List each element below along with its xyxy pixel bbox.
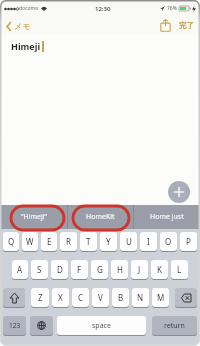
staticText: 12:30 bbox=[95, 5, 111, 13]
button[interactable]: V bbox=[92, 288, 109, 308]
staticText: “Himeji” bbox=[21, 212, 48, 222]
staticText: メモ bbox=[14, 21, 31, 31]
button[interactable]: F bbox=[71, 260, 88, 280]
button[interactable] bbox=[168, 181, 190, 203]
staticText: N bbox=[137, 292, 144, 303]
staticText: U bbox=[126, 236, 132, 247]
button[interactable]: C bbox=[72, 288, 89, 308]
staticText: K bbox=[157, 264, 162, 275]
button[interactable]: H bbox=[111, 260, 128, 280]
staticText: B bbox=[118, 292, 124, 303]
staticText: D bbox=[57, 264, 63, 275]
button[interactable]: J bbox=[131, 260, 148, 280]
staticText: Y bbox=[106, 236, 111, 247]
staticText: L bbox=[177, 264, 182, 275]
button[interactable] bbox=[175, 288, 197, 308]
staticText: Home just bbox=[150, 212, 184, 222]
staticText: space bbox=[92, 321, 111, 331]
button[interactable]: O bbox=[160, 232, 177, 252]
button[interactable]: Z bbox=[31, 288, 49, 308]
button[interactable] bbox=[3, 288, 25, 308]
button[interactable]: “Himeji” bbox=[1, 205, 67, 229]
button[interactable]: A bbox=[12, 260, 28, 280]
staticText: G bbox=[97, 264, 103, 275]
staticText: T bbox=[86, 236, 91, 247]
staticText: C bbox=[78, 292, 84, 303]
button[interactable]: G bbox=[91, 260, 108, 280]
button[interactable]: X bbox=[52, 288, 69, 308]
button[interactable]: D bbox=[51, 260, 68, 280]
button[interactable]: 123 bbox=[3, 316, 26, 336]
button[interactable]: return bbox=[152, 316, 197, 336]
button[interactable]: HomeKit bbox=[68, 205, 133, 229]
staticText: 123 bbox=[9, 321, 21, 330]
button[interactable]: S bbox=[31, 260, 48, 280]
staticText: Himeji bbox=[11, 40, 41, 52]
button[interactable]: Q bbox=[3, 232, 19, 252]
button[interactable]: L bbox=[171, 260, 188, 280]
button[interactable]: B bbox=[112, 288, 129, 308]
staticText: S bbox=[37, 264, 42, 275]
staticText: I bbox=[147, 236, 150, 247]
staticText: F bbox=[77, 264, 82, 275]
staticText: 完了 bbox=[179, 21, 194, 30]
staticText: J bbox=[138, 264, 141, 275]
staticText: Z bbox=[38, 292, 43, 303]
staticText: P bbox=[186, 236, 191, 247]
button[interactable]: M bbox=[152, 288, 169, 308]
staticText: docomo bbox=[19, 5, 39, 12]
button[interactable]: P bbox=[180, 232, 197, 252]
button[interactable] bbox=[160, 19, 171, 32]
staticText: W bbox=[26, 236, 34, 247]
staticText: E bbox=[47, 236, 52, 247]
staticText: HomeKit bbox=[86, 212, 115, 222]
button[interactable]: メモ bbox=[6, 21, 31, 31]
button[interactable]: 完了 bbox=[179, 21, 194, 30]
staticText: H bbox=[117, 264, 123, 275]
button[interactable]: space bbox=[57, 316, 146, 336]
staticText: R bbox=[66, 236, 71, 247]
button[interactable]: K bbox=[151, 260, 168, 280]
button[interactable] bbox=[30, 316, 53, 336]
button[interactable]: R bbox=[60, 232, 77, 252]
button[interactable]: N bbox=[132, 288, 149, 308]
staticText: V bbox=[98, 292, 103, 303]
button[interactable]: I bbox=[140, 232, 157, 252]
staticText: return bbox=[164, 321, 185, 331]
staticText: A bbox=[17, 264, 23, 275]
button[interactable]: Y bbox=[100, 232, 117, 252]
button[interactable]: U bbox=[120, 232, 137, 252]
staticText: M bbox=[157, 292, 165, 303]
staticText: 76% bbox=[167, 5, 177, 12]
button[interactable]: E bbox=[41, 232, 57, 252]
staticText: Q bbox=[8, 236, 15, 247]
button[interactable]: Home just bbox=[134, 205, 199, 229]
staticText: O bbox=[165, 236, 172, 247]
button[interactable]: W bbox=[22, 232, 38, 252]
button[interactable]: T bbox=[80, 232, 97, 252]
staticText: X bbox=[58, 292, 63, 303]
